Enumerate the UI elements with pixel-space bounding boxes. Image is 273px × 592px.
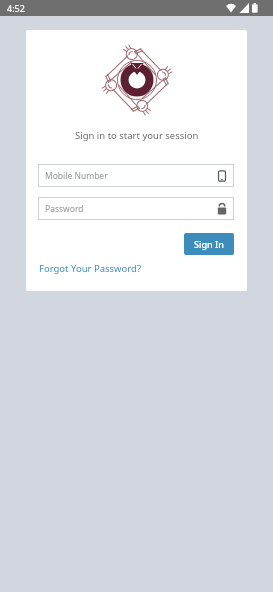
staticText: Sign in to start your session bbox=[75, 129, 199, 142]
button[interactable]: Sign In bbox=[184, 233, 234, 255]
button[interactable]: Forgot Your Password? bbox=[39, 262, 142, 275]
button[interactable]: Password bbox=[38, 197, 234, 220]
staticText: Sign In bbox=[194, 238, 224, 250]
staticText: 4:52 bbox=[7, 2, 25, 14]
button[interactable]: Mobile Number bbox=[38, 164, 234, 187]
staticText: Mobile Number bbox=[45, 170, 108, 182]
staticText: Password bbox=[45, 203, 84, 215]
